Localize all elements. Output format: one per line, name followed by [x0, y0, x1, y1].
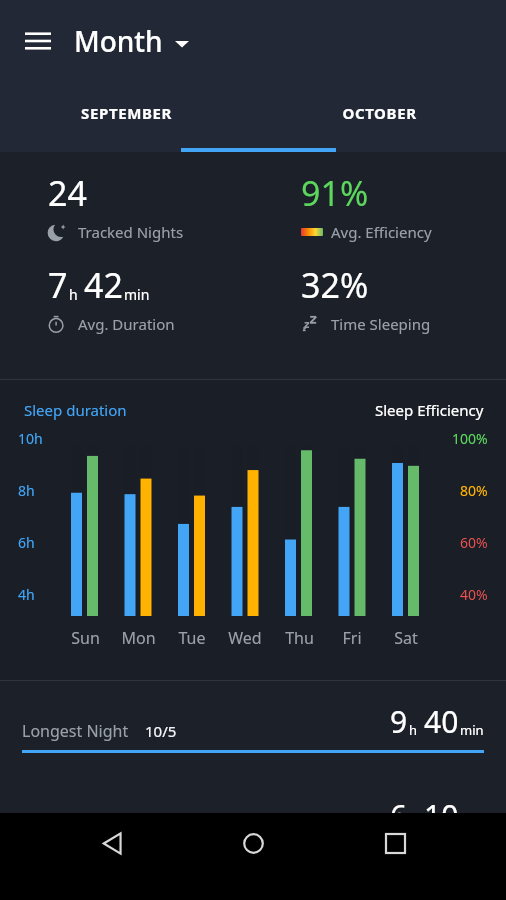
staticText: 100% [452, 429, 488, 448]
button[interactable]: OCTOBER [253, 74, 506, 152]
staticText: Shortest Night [22, 814, 132, 836]
staticText: Month [74, 22, 163, 60]
staticText: SEPTEMBER [81, 103, 172, 123]
button[interactable]: Back [82, 813, 142, 873]
staticText: Thu [285, 627, 314, 649]
staticText: 24 [48, 170, 87, 216]
staticText: h [69, 285, 78, 304]
staticText: Tracked Nights [78, 222, 184, 242]
button[interactable]: Shortest Night [0, 775, 506, 869]
staticText: Avg. Efficiency [331, 222, 432, 242]
staticText: 42 [84, 262, 123, 308]
staticText: 80% [460, 481, 488, 500]
staticText: Tue [178, 627, 206, 649]
staticText: Sun [71, 627, 100, 649]
staticText: Wed [228, 627, 262, 649]
staticText: h [409, 721, 418, 739]
staticText: Longest Night [22, 720, 129, 742]
staticText: 40% [460, 585, 488, 604]
button[interactable]: SEPTEMBER [0, 74, 253, 152]
button[interactable]: 24 [0, 170, 253, 242]
staticText: 6h [18, 533, 35, 552]
button[interactable]: Month [74, 22, 189, 60]
staticText: 40 [424, 701, 459, 742]
staticText: 10 [424, 795, 459, 836]
staticText: Sat [394, 627, 418, 649]
button[interactable]: 32% [253, 262, 506, 334]
staticText: 4h [18, 585, 35, 604]
staticText: OCTOBER [342, 103, 417, 123]
staticText: 7 [48, 262, 68, 308]
staticText: 10h [18, 429, 43, 448]
staticText: Fri [342, 627, 362, 649]
staticText: 10/5 [145, 721, 177, 741]
button[interactable]: 91% [253, 170, 506, 242]
staticText: 6 [390, 795, 408, 836]
button[interactable]: Sleep duration [24, 400, 127, 420]
button[interactable]: Home [223, 813, 283, 873]
staticText: Time Sleeping [331, 314, 431, 334]
button[interactable]: Longest Night [0, 681, 506, 775]
staticText: Mon [121, 627, 156, 649]
button[interactable]: Open navigation menu [14, 17, 62, 65]
button[interactable]: Recent apps [365, 813, 425, 873]
staticText: min [460, 721, 484, 739]
staticText: 8h [18, 481, 35, 500]
staticText: Avg. Duration [78, 314, 175, 334]
button[interactable]: 7 [0, 262, 253, 334]
staticText: min [124, 285, 150, 304]
staticText: 60% [460, 533, 488, 552]
staticText: 9 [390, 701, 408, 742]
staticText: 32% [301, 262, 369, 308]
button[interactable]: Sleep Efficiency [375, 400, 484, 420]
staticText: 91% [301, 170, 369, 216]
